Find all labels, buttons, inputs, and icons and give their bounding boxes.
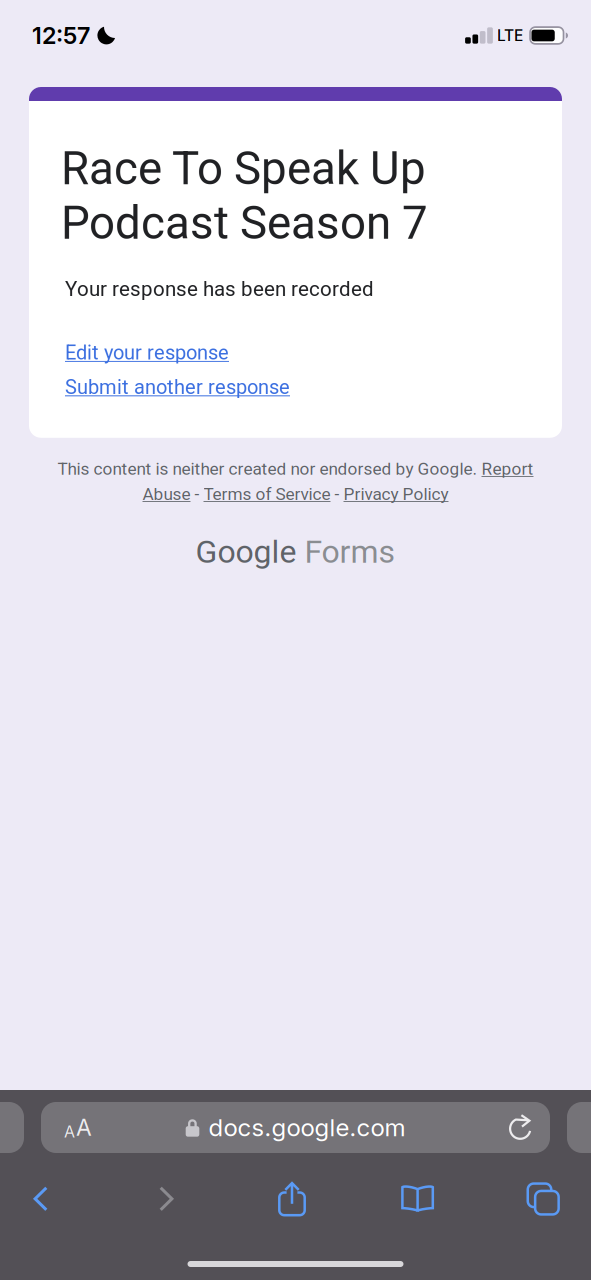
button[interactable]: Report — [481, 459, 533, 479]
button[interactable]: Tabs — [528, 1183, 559, 1214]
button[interactable]: Share — [278, 1181, 306, 1216]
staticText: - — [330, 484, 343, 504]
staticText: - — [190, 484, 203, 504]
staticText: docs.google.com — [208, 1113, 405, 1142]
button[interactable]: Terms of Service — [203, 484, 330, 504]
staticText: A — [76, 1114, 92, 1141]
button[interactable]: Privacy Policy — [343, 484, 448, 504]
staticText: Terms of Service — [203, 484, 330, 504]
staticText: A — [64, 1122, 75, 1141]
button[interactable]: Abuse — [142, 484, 190, 504]
staticText: Your response has been recorded — [65, 277, 374, 301]
staticText: Privacy Policy — [343, 484, 448, 504]
button[interactable]: Back — [33, 1186, 48, 1212]
staticText: 12:57 — [32, 21, 90, 50]
staticText: Submit another response — [65, 375, 290, 399]
button[interactable]: A — [41, 1102, 550, 1153]
button[interactable]: Bookmarks — [401, 1185, 434, 1212]
staticText: This content is neither created nor endo… — [57, 459, 481, 479]
button[interactable]: Edit your response — [65, 341, 229, 364]
button[interactable]: Forward — [159, 1186, 174, 1212]
button[interactable]: Submit another response — [65, 375, 290, 399]
staticText: Google — [195, 533, 296, 571]
staticText: Abuse — [142, 484, 190, 504]
staticText: Race To Speak Up — [61, 142, 426, 195]
staticText: Podcast Season 7 — [61, 196, 428, 250]
staticText: Edit your response — [65, 341, 229, 364]
staticText: Report — [481, 459, 533, 479]
staticText: Forms — [304, 533, 395, 571]
staticText: LTE — [497, 26, 523, 45]
